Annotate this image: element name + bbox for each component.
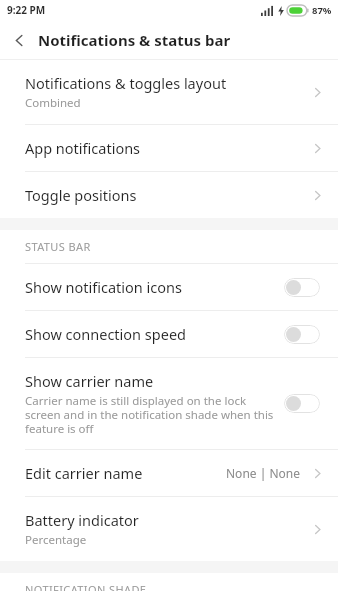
staticText: Show carrier name — [25, 371, 154, 391]
staticText: Show notification icons — [25, 277, 182, 297]
staticText: NOTIFICATION SHADE — [25, 582, 147, 591]
staticText: Edit carrier name — [25, 463, 143, 483]
staticText: Notifications & status bar — [38, 30, 231, 50]
staticText: App notifications — [25, 138, 141, 158]
staticText: Percentage — [25, 532, 87, 548]
button[interactable]: Edit carrier name — [0, 450, 338, 496]
staticText: Notifications & toggles layout — [25, 73, 227, 93]
button[interactable]: Toggle — [284, 278, 320, 297]
button[interactable]: App notifications — [0, 125, 338, 171]
button[interactable]: Toggle — [284, 394, 320, 413]
staticText: Battery indicator — [25, 510, 139, 530]
button[interactable]: Show carrier name — [0, 358, 338, 449]
staticText: STATUS BAR — [25, 239, 91, 254]
staticText: Carrier name is still displayed on the l… — [25, 393, 284, 436]
button[interactable]: Toggle — [284, 325, 320, 344]
staticText: Toggle positions — [25, 185, 137, 205]
staticText: 9:22 PM — [7, 3, 46, 17]
button[interactable]: Toggle positions — [0, 172, 338, 218]
button[interactable]: Notifications & toggles layout — [0, 60, 338, 124]
staticText: None | None — [226, 465, 300, 481]
staticText: Show connection speed — [25, 324, 186, 344]
button[interactable]: Show connection speed — [0, 311, 338, 357]
staticText: Combined — [25, 95, 81, 111]
button[interactable]: Battery indicator — [0, 497, 338, 561]
button[interactable]: Back — [0, 21, 38, 59]
staticText: 87% — [312, 4, 332, 17]
button[interactable]: Show notification icons — [0, 264, 338, 310]
